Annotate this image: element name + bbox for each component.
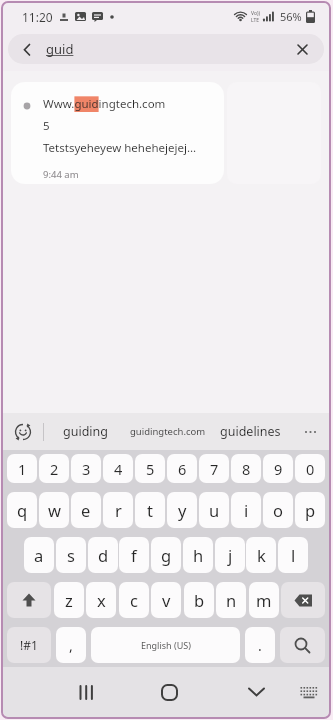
button[interactable] (281, 582, 325, 618)
staticText: g (161, 544, 172, 566)
staticText: guid (46, 40, 74, 58)
staticText: x (97, 589, 106, 611)
button[interactable]: c (119, 582, 149, 618)
button[interactable]: 0 (295, 454, 325, 483)
button[interactable] (292, 413, 329, 450)
staticText: 0 (306, 459, 315, 479)
button[interactable]: , (56, 627, 86, 663)
staticText: e (81, 499, 91, 521)
button[interactable]: b (184, 582, 214, 618)
staticText: p (305, 499, 316, 521)
staticText: m (256, 589, 272, 611)
staticText: 6 (178, 459, 187, 479)
staticText: guiding (63, 423, 108, 440)
button[interactable] (280, 34, 324, 64)
staticText: 3 (82, 459, 91, 479)
button[interactable]: o (263, 492, 293, 528)
button[interactable]: a (24, 537, 54, 573)
staticText: d (98, 544, 109, 566)
button[interactable] (8, 34, 46, 64)
button[interactable]: w (39, 492, 69, 528)
button[interactable]: q (7, 492, 37, 528)
button[interactable]: 6 (167, 454, 197, 483)
button[interactable]: v (151, 582, 181, 618)
staticText: z (65, 589, 73, 611)
staticText: l (291, 544, 296, 566)
button[interactable]: . (245, 627, 275, 663)
staticText: 9:44 am (43, 168, 79, 181)
button[interactable]: 1 (7, 454, 37, 483)
staticText: LTE (251, 17, 260, 24)
staticText: Tetstsyeheyew hehehejejej… (43, 140, 197, 156)
button[interactable]: 3 (71, 454, 101, 483)
button[interactable] (66, 667, 106, 717)
staticText: n (226, 589, 237, 611)
button[interactable]: k (246, 537, 276, 573)
button[interactable]: guiding (44, 413, 126, 450)
button[interactable] (3, 413, 43, 450)
button[interactable]: u (199, 492, 229, 528)
staticText: u (209, 499, 220, 521)
button[interactable]: Www.guidingtech.com (11, 82, 224, 184)
button[interactable]: y (167, 492, 197, 528)
button[interactable]: p (295, 492, 325, 528)
staticText: 5 (146, 459, 155, 479)
button[interactable] (7, 582, 51, 618)
button[interactable]: 8 (231, 454, 261, 483)
staticText: y (178, 499, 187, 521)
staticText: 7 (210, 459, 219, 479)
staticText: a (34, 544, 44, 566)
button[interactable]: guid (8, 34, 324, 64)
staticText: j (228, 544, 233, 566)
staticText: b (194, 589, 205, 611)
staticText: o (273, 499, 283, 521)
button[interactable]: s (56, 537, 86, 573)
button[interactable]: r (103, 492, 133, 528)
staticText: c (130, 589, 138, 611)
staticText: 2 (50, 459, 59, 479)
staticText: i (244, 499, 249, 521)
staticText: q (17, 499, 28, 521)
button[interactable]: x (86, 582, 116, 618)
staticText: h (193, 544, 204, 566)
staticText: 4 (114, 459, 123, 479)
staticText: t (147, 499, 153, 521)
button[interactable]: English (US) (91, 627, 240, 663)
button[interactable]: z (54, 582, 84, 618)
staticText: , (69, 636, 73, 655)
button[interactable] (289, 667, 329, 717)
button[interactable]: 7 (199, 454, 229, 483)
button[interactable]: i (231, 492, 261, 528)
staticText: 11:20 (22, 9, 53, 25)
staticText: !#1 (20, 637, 38, 653)
staticText: f (131, 544, 137, 566)
button[interactable]: 9 (263, 454, 293, 483)
button[interactable]: h (183, 537, 213, 573)
staticText: k (257, 544, 266, 566)
button[interactable]: f (119, 537, 149, 573)
button[interactable] (236, 667, 276, 717)
button[interactable]: guidelines (209, 413, 292, 450)
button[interactable]: 5 (135, 454, 165, 483)
staticText: 9 (274, 459, 283, 479)
button[interactable]: 4 (103, 454, 133, 483)
button[interactable] (280, 627, 325, 663)
staticText: Www.guidingtech.com (43, 96, 166, 112)
staticText: s (67, 544, 75, 566)
button[interactable]: g (151, 537, 181, 573)
staticText: 5 (43, 118, 50, 134)
button[interactable]: l (278, 537, 308, 573)
button[interactable] (149, 667, 189, 717)
button[interactable]: j (215, 537, 245, 573)
button[interactable]: !#1 (7, 627, 51, 663)
staticText: . (258, 636, 262, 655)
button[interactable]: guidingtech.com (126, 413, 209, 450)
staticText: guidingtech.com (130, 425, 206, 438)
button[interactable]: d (88, 537, 118, 573)
button[interactable]: t (135, 492, 165, 528)
button[interactable]: 2 (39, 454, 69, 483)
button[interactable]: m (249, 582, 279, 618)
staticText: guidelines (220, 423, 281, 440)
button[interactable]: e (71, 492, 101, 528)
button[interactable]: n (216, 582, 246, 618)
